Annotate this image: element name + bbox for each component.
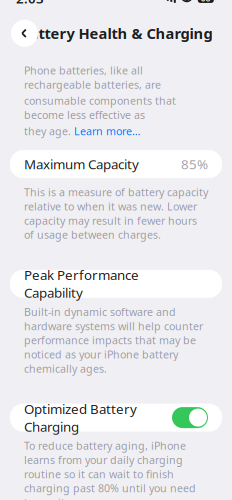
staticText: Phone batteries, like all rechargeable b… — [24, 63, 161, 92]
staticText: 85% — [181, 155, 208, 173]
staticText: Peak Performance Capability — [24, 266, 139, 301]
staticText: 68 — [201, 0, 211, 4]
staticText: Built-in dynamic software and hardware s… — [24, 305, 203, 376]
staticText: Optimized Battery Charging — [24, 400, 137, 435]
staticText: Learn more… — [74, 124, 140, 138]
button[interactable]: Optimized Battery Charging — [10, 404, 222, 432]
staticText: 2:03 — [16, 0, 44, 7]
button[interactable]: Maximum Capacity — [10, 150, 222, 178]
staticText: consumable components that become less e… — [24, 94, 176, 122]
button[interactable]: Peak Performance Capability — [10, 270, 222, 298]
staticText: Maximum Capacity — [24, 155, 139, 173]
button[interactable]: Back — [11, 20, 38, 47]
staticText: Battery Health & Charging — [19, 23, 212, 43]
button[interactable]: Learn more… — [74, 124, 140, 138]
staticText: This is a measure of battery capacity re… — [24, 185, 208, 242]
staticText: they age. — [24, 124, 74, 138]
staticText: To reduce battery aging, iPhone learns f… — [24, 439, 196, 500]
